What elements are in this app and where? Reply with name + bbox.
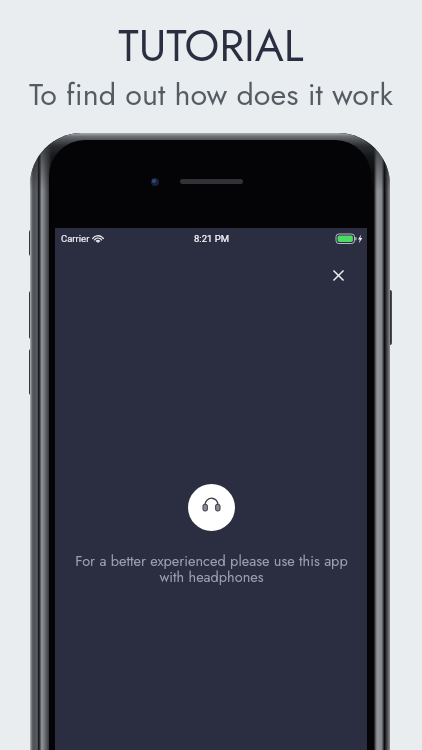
staticText: For a better experienced please use this…	[69, 550, 354, 587]
staticText: 8:21 PM	[194, 233, 229, 244]
staticText: Carrier	[61, 233, 90, 244]
button[interactable]: Close	[322, 259, 354, 291]
staticText: To find out how does it work	[29, 72, 393, 116]
staticText: TUTORIAL	[118, 14, 304, 78]
